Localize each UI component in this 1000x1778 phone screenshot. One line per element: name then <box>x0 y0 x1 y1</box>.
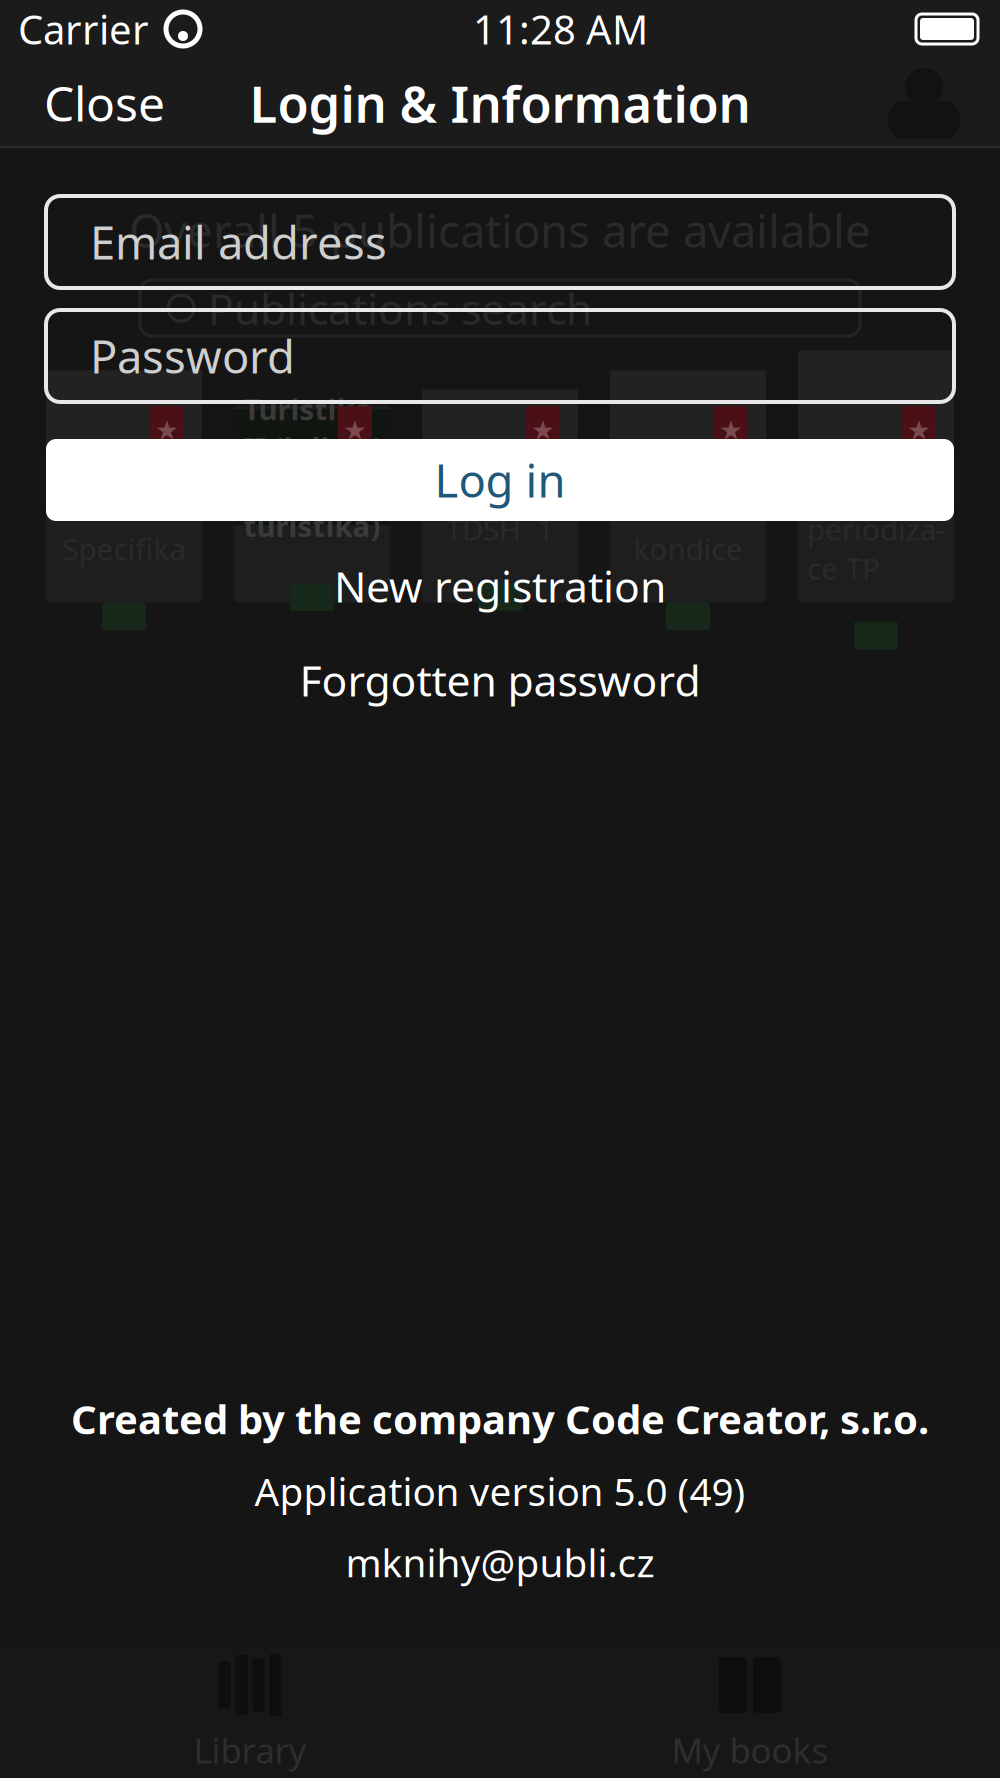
staticText: TDSH kondice <box>633 490 742 568</box>
staticText: Created by the company Code Creator, s.r… <box>71 1392 929 1445</box>
staticText: Log in <box>434 450 565 510</box>
staticText: Carrier <box>18 2 149 55</box>
button[interactable]: New registration <box>46 563 954 609</box>
staticText: Turistika II (inline/vodní turistika) <box>243 389 380 545</box>
button[interactable]: Log in <box>46 439 954 521</box>
staticText: Overall 5 publications are available <box>129 200 871 260</box>
staticText: TDSH 1 <box>446 510 554 549</box>
staticText: New registration <box>334 558 666 614</box>
staticText: ★ <box>719 415 743 445</box>
staticText: ★ <box>155 415 179 445</box>
staticText: Password <box>90 326 295 386</box>
button[interactable]: Forgotten password <box>46 657 954 703</box>
staticText: Library <box>193 1727 306 1773</box>
staticText: ★ <box>343 415 367 445</box>
staticText: Forgotten password <box>299 652 700 708</box>
button[interactable]: My books <box>500 1645 1000 1778</box>
staticText: Email address <box>90 212 387 272</box>
staticText: Application version 5.0 (49) <box>254 1465 745 1517</box>
staticText: Publications search <box>208 280 592 337</box>
button[interactable]: Account <box>870 56 978 150</box>
staticText: mknihy@publi.cz <box>345 1537 654 1588</box>
button[interactable]: Close <box>24 57 185 149</box>
staticText: TDSH periodizace TP <box>807 471 945 588</box>
staticText: Close <box>44 71 165 135</box>
staticText: ★ <box>907 415 931 445</box>
staticText: Login & Information <box>249 69 750 137</box>
staticText: My books <box>671 1727 828 1773</box>
staticText: TDSH - Specifika <box>62 490 185 568</box>
staticText: 11:28 AM <box>473 2 648 55</box>
staticText: ★ <box>531 415 555 445</box>
